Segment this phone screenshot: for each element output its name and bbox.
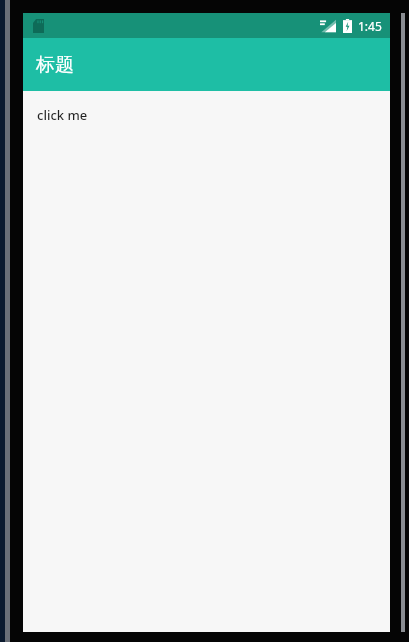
button[interactable]: click me	[32, 102, 93, 128]
staticText: click me	[37, 106, 88, 124]
staticText: 标题	[36, 53, 74, 77]
staticText: 1:45	[358, 18, 382, 34]
